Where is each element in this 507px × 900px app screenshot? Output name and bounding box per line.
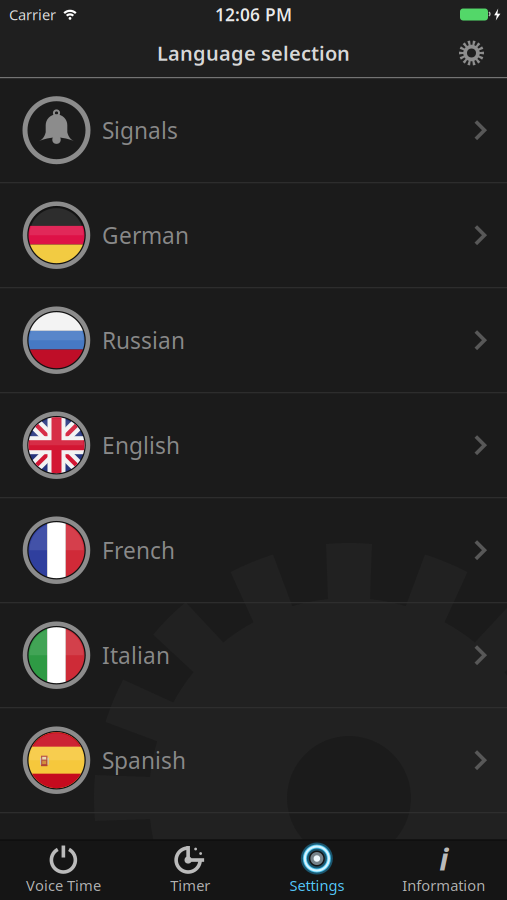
staticText: 12:06 PM xyxy=(215,3,292,26)
staticText: Carrier xyxy=(9,5,56,24)
staticText: Timer xyxy=(170,875,210,895)
button[interactable]: French xyxy=(0,498,507,603)
button[interactable]: i xyxy=(380,843,507,895)
staticText: Settings xyxy=(289,875,344,895)
button[interactable]: Signals xyxy=(0,78,507,183)
button[interactable]: Voice Time xyxy=(0,843,127,895)
staticText: Language selection xyxy=(157,40,350,66)
staticText: German xyxy=(102,220,189,250)
button[interactable]: Timer xyxy=(127,843,254,895)
button[interactable]: Settings xyxy=(253,843,380,895)
staticText: Information xyxy=(402,875,485,895)
staticText: Voice Time xyxy=(26,875,101,895)
staticText: Italian xyxy=(102,640,170,670)
button[interactable]: English xyxy=(0,393,507,498)
button[interactable]: Italian xyxy=(0,603,507,708)
staticText: Russian xyxy=(102,325,185,355)
button[interactable]: Russian xyxy=(0,288,507,393)
button[interactable]: Spanish xyxy=(0,708,507,813)
button[interactable]: German xyxy=(0,183,507,288)
staticText: Signals xyxy=(102,115,178,145)
staticText: French xyxy=(102,535,175,565)
button[interactable]: Settings xyxy=(459,40,507,65)
staticText: English xyxy=(102,430,180,460)
staticText: i xyxy=(439,838,448,879)
staticText: Spanish xyxy=(102,745,186,775)
